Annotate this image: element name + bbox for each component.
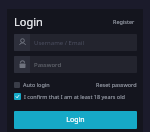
button[interactable]: Register bbox=[111, 15, 137, 28]
button[interactable]: Password bbox=[14, 56, 137, 73]
staticText: Reset password bbox=[96, 81, 137, 88]
button[interactable]: I confirm that I am at least 18 years ol… bbox=[14, 92, 125, 101]
staticText: Login bbox=[14, 14, 43, 29]
staticText: Auto login bbox=[23, 81, 50, 88]
button[interactable]: Login bbox=[14, 111, 137, 129]
other: User bbox=[18, 38, 27, 47]
staticText: Password bbox=[34, 61, 62, 69]
staticText: Username / Email bbox=[34, 39, 84, 47]
staticText: Login bbox=[66, 115, 85, 125]
button[interactable]: Reset password bbox=[96, 80, 137, 89]
button[interactable]: Auto login bbox=[14, 80, 50, 89]
staticText: Register bbox=[113, 18, 135, 25]
other: Password bbox=[18, 60, 27, 69]
staticText: I confirm that I am at least 18 years ol… bbox=[24, 93, 125, 100]
button[interactable]: User bbox=[14, 34, 137, 51]
